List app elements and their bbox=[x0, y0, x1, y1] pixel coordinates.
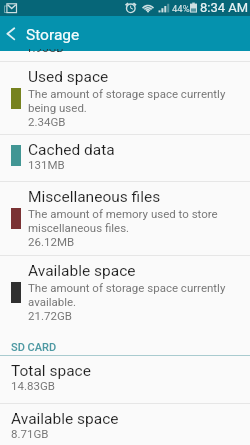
button[interactable]: Available space bbox=[0, 403, 250, 445]
staticText: 26.12MB bbox=[28, 235, 75, 248]
staticText: miscellaneous files. bbox=[28, 221, 130, 234]
button[interactable]: Cached data bbox=[0, 134, 250, 181]
staticText: 44% bbox=[172, 3, 190, 14]
staticText: Used space bbox=[28, 68, 109, 86]
staticText: 8.71GB bbox=[11, 427, 49, 440]
staticText: Available space bbox=[11, 410, 119, 428]
button[interactable]: Used space bbox=[0, 61, 250, 134]
staticText: 14.83GB bbox=[11, 379, 55, 392]
staticText: The amount of storage space currently bbox=[28, 281, 226, 294]
staticText: 2.34GB bbox=[28, 115, 66, 128]
button[interactable]: Navigate up bbox=[0, 16, 24, 51]
staticText: The amount of storage space currently bbox=[28, 87, 226, 100]
staticText: Total space bbox=[11, 362, 91, 380]
staticText: being used. bbox=[28, 101, 87, 114]
staticText: 131MB bbox=[28, 158, 65, 171]
staticText: 8:34 AM bbox=[200, 0, 249, 15]
staticText: The amount of memory used to store bbox=[28, 207, 218, 220]
staticText: Cached data bbox=[28, 141, 115, 159]
staticText: SD CARD bbox=[11, 341, 57, 354]
button[interactable]: Miscellaneous files bbox=[0, 181, 250, 255]
staticText: 1.95GB bbox=[26, 49, 64, 52]
button[interactable]: Total space bbox=[0, 355, 250, 403]
button[interactable]: Available space bbox=[0, 255, 250, 330]
staticText: Storage bbox=[26, 26, 80, 44]
staticText: Available space bbox=[28, 262, 136, 280]
staticText: available. bbox=[28, 295, 77, 308]
staticText: 21.72GB bbox=[28, 309, 72, 322]
staticText: Miscellaneous files bbox=[28, 188, 161, 206]
